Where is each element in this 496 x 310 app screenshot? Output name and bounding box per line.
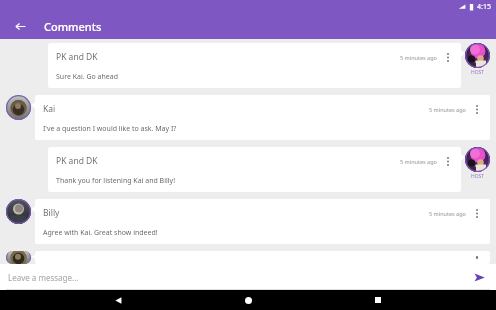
button[interactable]: Avatar [465, 147, 490, 172]
button[interactable]: Kai [35, 251, 490, 264]
staticText: HOST [471, 173, 485, 180]
staticText: Sure Kai. Go ahead [56, 72, 119, 82]
button[interactable]: More options [443, 49, 453, 65]
button[interactable]: Send [470, 268, 488, 286]
button[interactable]: More options [443, 153, 453, 169]
button[interactable]: Billy [35, 199, 490, 244]
button[interactable]: PK and DK [48, 147, 461, 192]
staticText: Leave a message... [8, 272, 79, 283]
staticText: PK and DK [56, 155, 98, 167]
staticText: Comments [44, 19, 102, 34]
staticText: 5 minutes ago [429, 106, 466, 113]
staticText: HOST [471, 69, 485, 76]
staticText: 5 minutes ago [429, 210, 466, 217]
button[interactable]: More options [472, 101, 482, 117]
staticText: 5 minutes ago [400, 158, 437, 165]
button[interactable]: Avatar [6, 251, 31, 264]
button[interactable]: Avatar [6, 199, 31, 224]
staticText: I've a question I would like to ask. May… [43, 124, 177, 134]
button[interactable]: More options [472, 257, 482, 258]
staticText: Agree with Kai. Great show indeed! [43, 228, 158, 238]
staticText: Thank you for listening Kai and Billy! [56, 176, 176, 186]
button[interactable]: Back [10, 16, 30, 36]
button[interactable]: More options [472, 205, 482, 221]
staticText: Billy [43, 207, 60, 219]
button[interactable]: Recents [366, 290, 390, 310]
button[interactable]: Home [236, 290, 260, 310]
staticText: Kai [43, 103, 56, 115]
button[interactable]: Back [106, 290, 130, 310]
staticText: 4:15 [477, 2, 491, 12]
button[interactable]: Avatar [6, 95, 31, 120]
button[interactable]: Avatar [465, 43, 490, 68]
button[interactable]: Leave a message... [8, 272, 462, 283]
button[interactable]: PK and DK [48, 43, 461, 88]
button[interactable]: Kai [35, 95, 490, 140]
staticText: PK and DK [56, 51, 98, 63]
staticText: 5 minutes ago [400, 54, 437, 61]
